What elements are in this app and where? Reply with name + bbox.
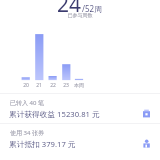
button[interactable]: 使用 34 张券	[0, 124, 160, 153]
staticText: 20	[17, 82, 35, 89]
staticText: 23	[57, 82, 75, 89]
other: 优惠券详情	[142, 139, 151, 148]
staticText: 累计抵扣 379.17 元	[9, 139, 76, 150]
staticText: 24	[57, 0, 82, 19]
staticText: 22	[44, 82, 62, 89]
staticText: 使用 34 张券	[10, 129, 44, 137]
other: 收益详情	[142, 109, 151, 118]
staticText: /52周	[82, 3, 103, 14]
staticText: 本周	[70, 82, 88, 88]
staticText: 已转入 40 笔	[10, 99, 44, 107]
staticText: 累计获得收益 15230.81 元	[9, 109, 100, 120]
staticText: 21	[30, 82, 48, 89]
button[interactable]: 已转入 40 笔	[0, 94, 160, 123]
staticText: 已参与周数	[0, 12, 160, 18]
